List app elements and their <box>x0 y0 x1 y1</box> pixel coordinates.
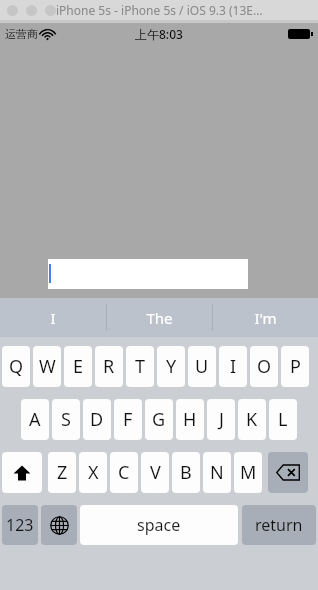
staticText: T <box>135 354 146 379</box>
staticText: I <box>50 308 56 328</box>
staticText: The <box>146 308 173 328</box>
button[interactable]: Shift <box>2 452 42 493</box>
staticText: I'm <box>254 308 277 328</box>
button[interactable]: Y <box>157 346 185 387</box>
button[interactable]: I <box>0 298 106 337</box>
button[interactable]: E <box>64 346 92 387</box>
staticText: B <box>180 460 192 485</box>
staticText: C <box>118 460 130 485</box>
button[interactable]: return <box>242 505 316 545</box>
staticText: 运营商 <box>5 27 38 41</box>
staticText: M <box>240 460 257 485</box>
button[interactable] <box>48 259 248 289</box>
button[interactable]: I'm <box>213 298 318 337</box>
staticText: space <box>137 514 181 536</box>
button[interactable]: N <box>203 452 231 493</box>
staticText: K <box>246 407 258 432</box>
button[interactable]: W <box>33 346 61 387</box>
button[interactable]: B <box>172 452 200 493</box>
button[interactable]: M <box>234 452 262 493</box>
staticText: W <box>39 354 56 379</box>
button[interactable]: The <box>107 298 212 337</box>
button[interactable]: Q <box>2 346 30 387</box>
staticText: S <box>61 407 71 432</box>
staticText: 上午8:03 <box>135 26 183 42</box>
button[interactable]: X <box>79 452 107 493</box>
button[interactable]: U <box>188 346 216 387</box>
staticText: H <box>183 407 197 432</box>
button[interactable]: S <box>52 399 80 440</box>
button[interactable]: space <box>80 505 238 545</box>
button[interactable]: Z <box>48 452 76 493</box>
staticText: R <box>103 354 115 379</box>
staticText: iPhone 5s - iPhone 5s / iOS 9.3 (13E… <box>56 2 263 18</box>
staticText: V <box>150 460 161 485</box>
button[interactable]: I <box>219 346 247 387</box>
staticText: E <box>73 354 84 379</box>
staticText: Z <box>57 460 68 485</box>
button[interactable]: P <box>281 346 309 387</box>
button[interactable]: Next keyboard <box>41 505 77 545</box>
button[interactable]: J <box>207 399 235 440</box>
staticText: G <box>152 407 166 432</box>
button[interactable]: D <box>83 399 111 440</box>
button[interactable]: C <box>110 452 138 493</box>
button[interactable]: L <box>269 399 297 440</box>
button[interactable]: G <box>145 399 173 440</box>
button[interactable]: V <box>141 452 169 493</box>
button[interactable]: K <box>238 399 266 440</box>
button[interactable] <box>26 5 37 16</box>
staticText: U <box>195 354 209 379</box>
button[interactable]: A <box>21 399 49 440</box>
button[interactable]: Backspace <box>268 452 308 493</box>
button[interactable]: R <box>95 346 123 387</box>
button[interactable]: F <box>114 399 142 440</box>
staticText: L <box>278 407 288 432</box>
staticText: A <box>29 407 41 432</box>
button[interactable]: T <box>126 346 154 387</box>
staticText: F <box>123 407 133 432</box>
staticText: N <box>210 460 224 485</box>
button[interactable] <box>7 5 18 16</box>
staticText: O <box>257 354 272 379</box>
staticText: D <box>90 407 104 432</box>
staticText: J <box>219 407 224 432</box>
button[interactable]: H <box>176 399 204 440</box>
button[interactable]: O <box>250 346 278 387</box>
staticText: X <box>88 460 99 485</box>
staticText: P <box>290 354 301 379</box>
staticText: Y <box>166 354 177 379</box>
staticText: Q <box>9 354 24 379</box>
staticText: return <box>255 514 303 536</box>
staticText: 123 <box>6 514 34 536</box>
button[interactable]: 123 <box>2 505 38 545</box>
staticText: I <box>230 354 237 379</box>
button[interactable] <box>45 5 56 16</box>
